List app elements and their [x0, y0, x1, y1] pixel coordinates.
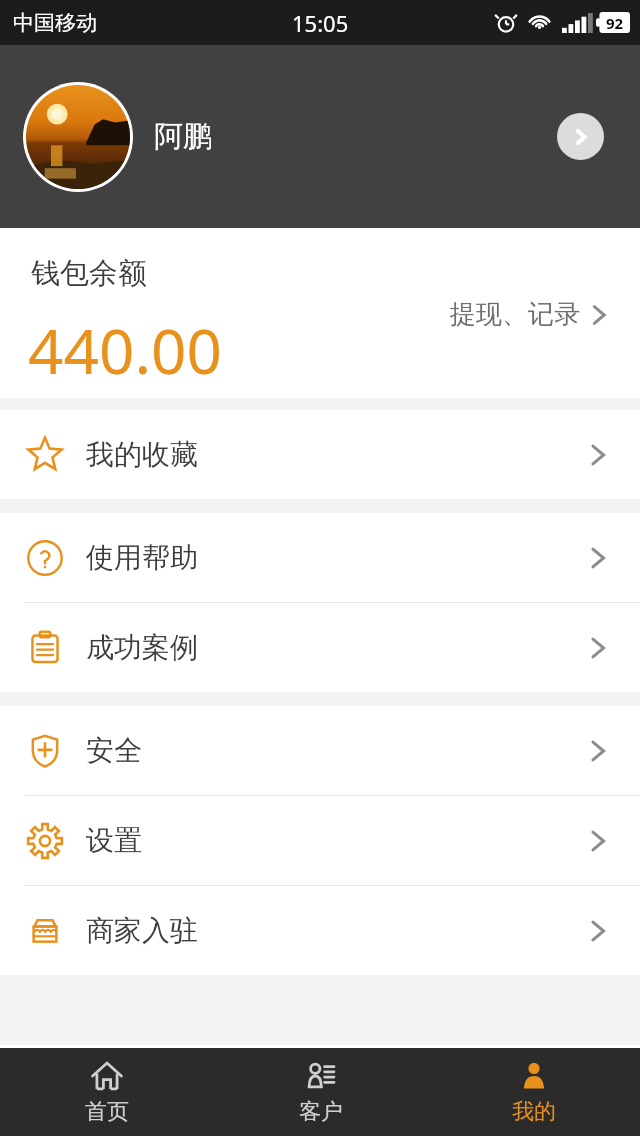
staticText: 安全 [86, 733, 142, 768]
button[interactable]: 我的收藏 [0, 410, 640, 499]
button[interactable]: 设置 [0, 796, 640, 885]
button[interactable]: 首页 [0, 1048, 214, 1136]
staticText: 客户 [299, 1098, 343, 1126]
button[interactable]: 成功案例 [0, 603, 640, 692]
button[interactable]: 安全 [0, 706, 640, 795]
staticText: 提现、记录 [450, 298, 580, 331]
button[interactable]: 我的 [427, 1048, 640, 1136]
staticText: 商家入驻 [86, 913, 198, 948]
staticText: 我的 [512, 1098, 556, 1126]
button[interactable]: 商家入驻 [0, 886, 640, 975]
staticText: 中国移动 [13, 10, 97, 36]
button[interactable]: Profile details [557, 113, 604, 160]
staticText: 92 [606, 13, 624, 33]
staticText: 钱包余额 [31, 255, 147, 292]
button[interactable]: 使用帮助 [0, 513, 640, 602]
staticText: 首页 [85, 1098, 129, 1126]
staticText: 15:05 [292, 8, 349, 38]
staticText: 440.00 [28, 308, 222, 392]
staticText: 我的收藏 [86, 437, 198, 472]
staticText: 阿鹏 [154, 118, 212, 155]
button[interactable]: 提现、记录 [450, 298, 612, 331]
staticText: 使用帮助 [86, 540, 198, 575]
staticText: 成功案例 [86, 630, 198, 665]
staticText: 设置 [86, 823, 142, 858]
button[interactable]: 客户 [214, 1048, 427, 1136]
